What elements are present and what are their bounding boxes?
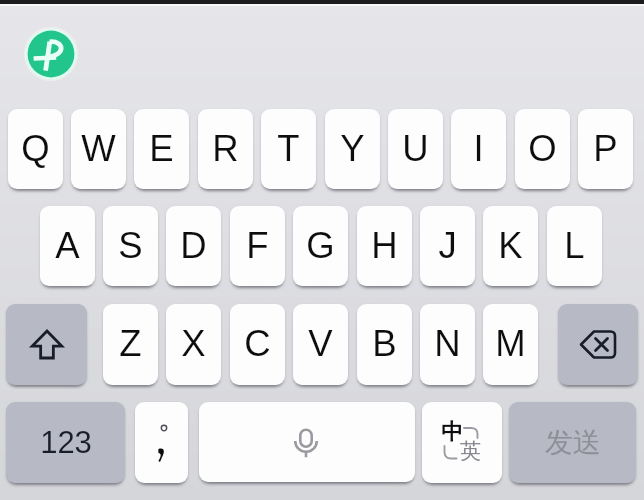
staticText: W [81, 128, 116, 169]
button[interactable]: L [547, 206, 602, 286]
staticText: R [212, 128, 239, 169]
staticText: K [498, 225, 523, 266]
staticText: J [438, 225, 457, 266]
staticText: V [308, 323, 333, 364]
staticText: 123 [40, 425, 92, 460]
button[interactable]: G [293, 206, 348, 286]
staticText: 发送 [545, 425, 601, 460]
staticText: D [180, 225, 207, 266]
staticText: 英 [460, 438, 481, 464]
button[interactable]: R [198, 109, 253, 189]
button[interactable]: J [420, 206, 475, 286]
staticText: F [246, 225, 269, 266]
button[interactable]: V [293, 304, 348, 385]
staticText: U [402, 128, 429, 169]
button[interactable]: Input method logo [23, 26, 79, 82]
staticText: B [372, 323, 397, 364]
staticText: L [564, 225, 585, 266]
button[interactable]: Backspace [558, 304, 638, 385]
button[interactable]: Voice input [199, 402, 415, 482]
button[interactable]: E [134, 109, 189, 189]
button[interactable]: Shift [6, 304, 87, 385]
staticText: Y [340, 128, 365, 169]
button[interactable]: Q [8, 109, 63, 189]
staticText: P [593, 128, 618, 169]
button[interactable]: A [40, 206, 95, 286]
button[interactable]: P [578, 109, 633, 189]
staticText: M [495, 323, 526, 364]
staticText: G [306, 225, 335, 266]
staticText: A [55, 225, 80, 266]
staticText: S [118, 225, 143, 266]
button[interactable]: U [388, 109, 443, 189]
button[interactable]: Z [103, 304, 158, 385]
button[interactable]: O [515, 109, 570, 189]
button[interactable]: D [166, 206, 221, 286]
staticText: O [528, 128, 557, 169]
button[interactable]: X [166, 304, 221, 385]
staticText: Q [21, 128, 50, 169]
button[interactable]: Y [325, 109, 380, 189]
button[interactable]: M [483, 304, 538, 385]
staticText: Z [119, 323, 142, 364]
staticText: I [473, 128, 484, 169]
button[interactable]: 123 [6, 402, 125, 483]
button[interactable]: T [261, 109, 316, 189]
button[interactable]: W [71, 109, 126, 189]
button[interactable]: H [357, 206, 412, 286]
staticText: 中 [441, 418, 463, 446]
button[interactable]: K [483, 206, 538, 286]
button[interactable]: C [230, 304, 285, 385]
staticText: N [434, 323, 461, 364]
staticText: X [181, 323, 206, 364]
button[interactable]: N [420, 304, 475, 385]
staticText: C [244, 323, 271, 364]
staticText: T [277, 128, 300, 169]
button[interactable]: I [451, 109, 506, 189]
button[interactable]: Comma and period [135, 402, 188, 483]
staticText: E [149, 128, 174, 169]
button[interactable]: Switch Chinese and English [422, 402, 502, 483]
button[interactable]: F [230, 206, 285, 286]
staticText: H [371, 225, 398, 266]
button[interactable]: S [103, 206, 158, 286]
button[interactable]: 发送 [509, 402, 636, 483]
button[interactable]: B [357, 304, 412, 385]
